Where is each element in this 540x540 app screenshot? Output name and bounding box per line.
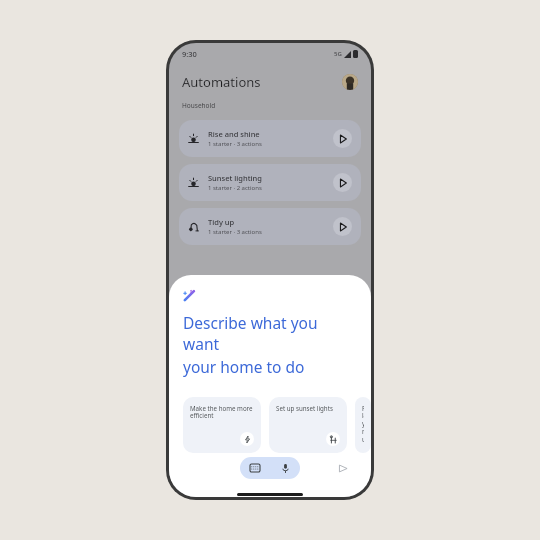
button[interactable]: Profile <box>342 74 358 90</box>
button[interactable]: Keyboard <box>240 457 270 479</box>
staticText: 5G <box>334 50 342 58</box>
staticText: Tidy up <box>208 217 235 227</box>
button[interactable]: Play music when I get <box>355 397 371 453</box>
button[interactable]: Set up sunset lights <box>269 397 347 453</box>
button[interactable]: Run automation <box>333 129 352 148</box>
button[interactable]: Sunset lighting <box>179 164 361 201</box>
staticText: Play music when I get <box>362 404 364 446</box>
staticText: 9:30 <box>182 49 197 59</box>
staticText: 1 starter · 3 actions <box>208 228 262 236</box>
staticText: 1 starter · 2 actions <box>208 184 262 192</box>
staticText: Household <box>182 101 216 110</box>
staticText: Describe what you want <box>183 312 357 354</box>
button[interactable]: Send <box>335 460 351 476</box>
staticText: Sunset lighting <box>208 173 262 183</box>
staticText: Automations <box>182 73 261 91</box>
button[interactable]: Run automation <box>333 217 352 236</box>
staticText: Set up sunset lights <box>276 404 333 412</box>
button[interactable]: Rise and shine <box>179 120 361 157</box>
staticText: Make the home more efficient <box>190 404 254 420</box>
staticText: your home to do <box>183 356 305 377</box>
button[interactable]: Tidy up <box>179 208 361 245</box>
button[interactable]: Make the home more efficient <box>183 397 261 453</box>
staticText: 1 starter · 3 actions <box>208 140 262 148</box>
staticText: Rise and shine <box>208 129 260 139</box>
button[interactable]: Run automation <box>333 173 352 192</box>
button[interactable]: Voice input <box>270 457 300 479</box>
other: AI suggestion <box>183 289 196 302</box>
